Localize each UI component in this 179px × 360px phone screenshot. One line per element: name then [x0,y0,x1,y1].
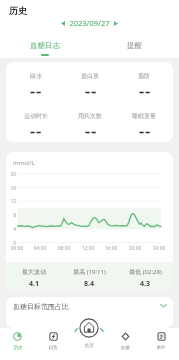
staticText: 碳水 [30,72,42,80]
staticText: 12 [6,198,16,205]
button[interactable]: Previous day [58,18,68,28]
staticText: mmol/L [13,159,35,167]
button[interactable]: Next day [111,18,121,28]
staticText: 血糖目标范围占比 [13,302,69,311]
staticText: 最大波动 [22,268,46,276]
staticText: 历史 [13,345,23,351]
staticText: 16:00 [102,245,120,252]
staticText: 睡眠质量 [132,112,156,120]
button[interactable]: 趋势 [35,328,71,360]
staticText: 血糖 [120,345,130,351]
button[interactable]: 血糖 [107,328,143,360]
button[interactable]: 事件 [143,328,179,360]
staticText: 最高 (19:11) [73,268,106,276]
staticText: 2023/09/27 [69,18,110,28]
button[interactable]: 历史 [0,328,35,360]
staticText: 12:00 [79,245,97,252]
staticText: 脂肪 [138,72,150,80]
staticText: 提醒 [127,41,142,50]
staticText: 04:00 [31,245,49,252]
staticText: 4.3 [140,279,150,289]
staticText: 0 [6,240,16,247]
staticText: 4 [6,226,16,233]
staticText: 20:00 [126,245,144,252]
staticText: 血糖日志 [30,41,60,50]
button[interactable]: 血糖目标范围占比 [6,297,173,328]
staticText: 16 [6,185,16,192]
staticText: 用药次数 [78,112,102,120]
button[interactable]: 血糖日志 [0,41,89,56]
staticText: 事件 [156,345,166,351]
staticText: 8 [6,212,16,219]
staticText: 00:00 [8,245,26,252]
staticText: 运动时长 [24,112,48,120]
staticText: 蛋白质 [81,72,99,80]
staticText: 20 [6,171,16,178]
staticText: 历史 [9,5,27,16]
staticText: 08:00 [55,245,73,252]
staticText: 最低 (02:28) [129,268,162,276]
staticText: 趋势 [48,345,58,351]
staticText: 4.1 [29,279,39,289]
staticText: 24:00 [150,245,168,252]
staticText: 首页 [84,343,94,349]
staticText: 8.4 [84,279,94,289]
button[interactable]: 提醒 [89,41,179,54]
button[interactable]: 首页 Home [71,328,107,360]
